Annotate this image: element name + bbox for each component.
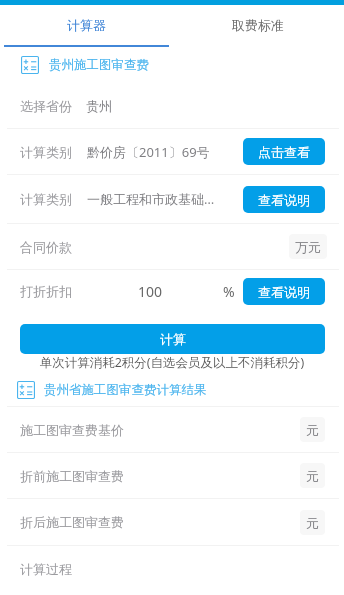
button[interactable]: 折后施工图审查费 [0, 499, 344, 545]
staticText: 万元 [295, 239, 321, 255]
button[interactable]: 取费标准 [172, 5, 344, 45]
staticText: % [223, 282, 235, 301]
staticText: 打折折扣 [20, 283, 72, 299]
staticText: 单次计算消耗2积分(自选会员及以上不消耗积分) [0, 354, 344, 371]
button[interactable]: 查看说明 [243, 186, 325, 213]
staticText: 贵州省施工图审查费计算结果 [44, 382, 207, 398]
staticText: 计算 [160, 331, 186, 347]
staticText: 计算类别 [20, 144, 72, 160]
button[interactable]: 计算过程 [0, 546, 344, 592]
button[interactable]: 施工图审查费基价 [0, 407, 344, 452]
button[interactable]: 合同价款 [0, 224, 344, 269]
staticText: 查看说明 [258, 284, 310, 300]
staticText: 元 [306, 422, 319, 438]
staticText: 施工图审查费基价 [20, 422, 124, 438]
staticText: 选择省份 [20, 98, 72, 114]
button[interactable]: 贵州省施工图审查费计算结果 [0, 374, 344, 406]
staticText: 点击查看 [258, 144, 310, 160]
staticText: 折后施工图审查费 [20, 514, 124, 530]
staticText: 100 [138, 282, 163, 301]
button[interactable]: 计算器 [0, 5, 172, 45]
button[interactable]: 选择省份 [0, 83, 344, 128]
staticText: 元 [306, 468, 319, 484]
staticText: 折前施工图审查费 [20, 468, 124, 484]
staticText: 计算器 [67, 17, 106, 33]
staticText: 贵州施工图审查费 [49, 57, 149, 73]
staticText: 一般工程和市政基础… [87, 190, 243, 208]
button[interactable]: 元 [300, 463, 325, 488]
staticText: 元 [306, 515, 319, 531]
button[interactable]: 元 [300, 417, 325, 442]
staticText: 计算类别 [20, 191, 72, 207]
button[interactable]: 计算 [20, 324, 325, 354]
button[interactable]: 折前施工图审查费 [0, 453, 344, 498]
button[interactable]: 元 [300, 510, 325, 535]
button[interactable]: 万元 [289, 234, 327, 259]
button[interactable]: 贵州施工图审查费 [0, 47, 344, 83]
button[interactable]: 查看说明 [243, 278, 325, 305]
staticText: 贵州 [86, 98, 112, 114]
staticText: 取费标准 [232, 17, 284, 33]
button[interactable]: 点击查看 [243, 138, 325, 165]
staticText: 合同价款 [20, 239, 72, 255]
staticText: 计算过程 [20, 561, 72, 577]
staticText: 查看说明 [258, 192, 310, 208]
staticText: 黔价房〔2011〕69号 [87, 143, 243, 161]
